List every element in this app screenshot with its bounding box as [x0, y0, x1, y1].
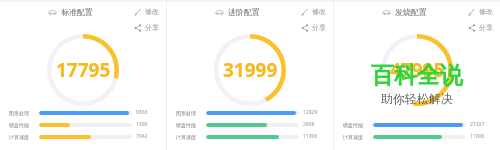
button[interactable]: 硬盘性能 [343, 121, 492, 128]
other: 修改 [134, 8, 142, 16]
staticText: 1390 [136, 121, 148, 128]
staticText: 百科全说 [371, 61, 463, 90]
button[interactable]: 硬盘性能 [9, 121, 158, 128]
staticText: 17795 [56, 57, 111, 83]
staticText: 图形处理 [176, 110, 196, 116]
other: 修改 [301, 8, 309, 16]
staticText: 11006 [470, 133, 485, 140]
staticText: 分享 [479, 23, 493, 32]
staticText: 12829 [303, 109, 318, 116]
staticText: 7042 [136, 133, 148, 140]
staticText: 修改 [145, 7, 159, 16]
staticText: 硬盘性能 [343, 122, 363, 128]
staticText: 图形处理 [9, 110, 29, 116]
staticText: 分享 [312, 23, 326, 32]
staticText: 发烧配置 [395, 7, 427, 17]
staticText: 2868 [303, 121, 315, 128]
button[interactable]: 计算速度 [176, 133, 325, 140]
button[interactable]: 分享 [300, 22, 327, 33]
button[interactable]: 分享 [133, 22, 160, 33]
staticText: 进阶配置 [228, 7, 260, 17]
staticText: 计算速度 [343, 134, 363, 140]
button[interactable]: 硬盘性能 [176, 121, 325, 128]
staticText: 47995 [390, 57, 445, 83]
staticText: 助你轻松解决 [381, 91, 453, 106]
other: 分享 [468, 24, 476, 32]
other: 配置 [48, 8, 57, 17]
staticText: 分享 [145, 23, 159, 32]
staticText: 硬盘性能 [176, 122, 196, 128]
button[interactable]: 修改 [300, 6, 327, 17]
other: 配置 [382, 8, 391, 17]
other: 修改 [468, 8, 476, 16]
button[interactable]: 分享 [467, 22, 494, 33]
other: 分享 [301, 24, 309, 32]
button[interactable]: 图形处理 [9, 109, 158, 116]
staticText: 11006 [303, 133, 318, 140]
staticText: 计算速度 [176, 134, 196, 140]
staticText: 计算速度 [9, 134, 29, 140]
staticText: 31999 [223, 57, 278, 83]
other: 配置 [215, 8, 224, 17]
staticText: 修改 [479, 7, 493, 16]
button[interactable]: 修改 [133, 6, 160, 17]
staticText: 修改 [312, 7, 326, 16]
staticText: 27207 [470, 121, 485, 128]
button[interactable]: 修改 [467, 6, 494, 17]
other: 分享 [134, 24, 142, 32]
staticText: 9363 [136, 109, 148, 116]
button[interactable]: 计算速度 [9, 133, 158, 140]
staticText: 硬盘性能 [9, 122, 29, 128]
staticText: 标准配置 [61, 7, 93, 17]
button[interactable]: 图形处理 [176, 109, 325, 116]
button[interactable]: 计算速度 [343, 133, 492, 140]
